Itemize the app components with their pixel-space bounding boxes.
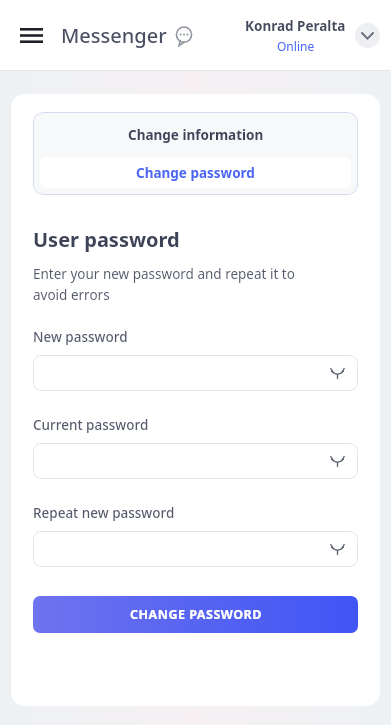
button[interactable]: Show New password	[326, 362, 348, 384]
staticText: Messenger	[61, 22, 167, 49]
button[interactable]: Account menu	[355, 23, 380, 48]
button[interactable]: Konrad Peralta	[245, 17, 380, 54]
staticText: CHANGE PASSWORD	[130, 606, 262, 623]
staticText: New password	[33, 328, 128, 346]
staticText: User password	[33, 226, 180, 253]
button[interactable]: Show New password	[33, 355, 358, 391]
button[interactable]: Change password	[40, 157, 351, 188]
staticText: Konrad Peralta	[245, 17, 346, 35]
button[interactable]: Show Current password	[326, 450, 348, 472]
staticText: Change password	[136, 164, 255, 182]
button[interactable]: Show Current password	[33, 443, 358, 479]
button[interactable]: Show Repeat new password	[326, 538, 348, 560]
button[interactable]: Change information	[40, 112, 351, 157]
staticText: Current password	[33, 416, 149, 434]
staticText: Online	[277, 38, 315, 54]
staticText: Change information	[128, 126, 264, 144]
staticText: Repeat new password	[33, 504, 175, 522]
button[interactable]: Messenger	[61, 22, 194, 49]
button[interactable]: CHANGE PASSWORD	[33, 596, 358, 633]
staticText: Enter your new password and repeat it to…	[33, 265, 295, 304]
button[interactable]: Open navigation menu	[14, 18, 48, 52]
button[interactable]: Show Repeat new password	[33, 531, 358, 567]
